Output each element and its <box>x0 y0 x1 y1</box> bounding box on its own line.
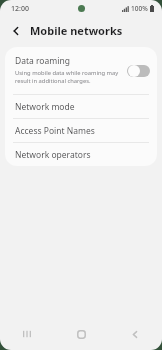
button[interactable]: Data roaming switch, off <box>127 64 150 77</box>
button[interactable]: Back <box>108 318 162 350</box>
button[interactable]: Home <box>54 318 108 350</box>
button[interactable]: Access Point Names <box>5 119 157 142</box>
button[interactable]: Recent apps <box>0 318 54 350</box>
staticText: Mobile networks <box>30 23 123 38</box>
staticText: 12:00 <box>11 4 29 14</box>
staticText: Access Point Names <box>15 125 95 137</box>
staticText: Network operators <box>15 149 91 161</box>
staticText: Using mobile data while roaming may resu… <box>15 69 122 85</box>
staticText: Network mode <box>15 101 75 113</box>
button[interactable]: Navigate up <box>7 22 25 40</box>
button[interactable]: Network operators <box>5 143 157 166</box>
staticText: 100% <box>131 4 148 13</box>
staticText: Data roaming <box>15 55 70 67</box>
button[interactable]: Data roaming <box>5 47 157 94</box>
button[interactable]: Network mode <box>5 95 157 118</box>
